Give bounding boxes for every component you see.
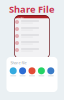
staticText: with Signature — [15, 16, 49, 23]
staticText: Documents — [17, 10, 31, 21]
staticText: Share File — [9, 3, 55, 15]
staticText: Share file — [10, 60, 26, 65]
